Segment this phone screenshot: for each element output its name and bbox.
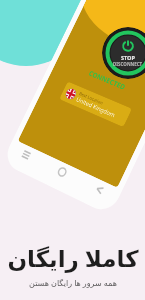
staticText: DISCONNECT <box>113 61 143 67</box>
staticText: Best Location <box>78 90 105 106</box>
staticText: STOP <box>121 54 135 61</box>
staticText: United Kingdom <box>75 95 117 119</box>
staticText: همه سرور ها رایگان هستن <box>29 277 117 288</box>
button[interactable]: Disconnect VPN <box>102 27 145 79</box>
button[interactable]: Best Location <box>59 81 132 127</box>
staticText: کاملا رایگان <box>7 242 139 273</box>
staticText: CONNECTED <box>87 69 127 93</box>
